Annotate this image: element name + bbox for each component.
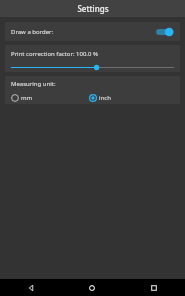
staticText: mm [21, 94, 33, 102]
button[interactable]: Print correction factor slider [11, 63, 174, 72]
button[interactable]: inch [89, 92, 174, 103]
staticText: Measuring unit: [11, 80, 56, 88]
staticText: Settings [77, 3, 109, 14]
button[interactable]: Home [61, 279, 123, 296]
button[interactable]: Draw a border toggle [154, 26, 174, 38]
button[interactable]: Back [0, 279, 61, 296]
staticText: Print correction factor: 100.0 % [11, 50, 98, 58]
button[interactable]: Recents [123, 279, 185, 296]
button[interactable]: mm [11, 92, 89, 103]
staticText: inch [99, 94, 111, 102]
staticText: Draw a border: [11, 28, 54, 36]
button[interactable]: Print correction factor: 100.0 % [5, 45, 180, 72]
button[interactable]: Draw a border: [5, 22, 180, 41]
